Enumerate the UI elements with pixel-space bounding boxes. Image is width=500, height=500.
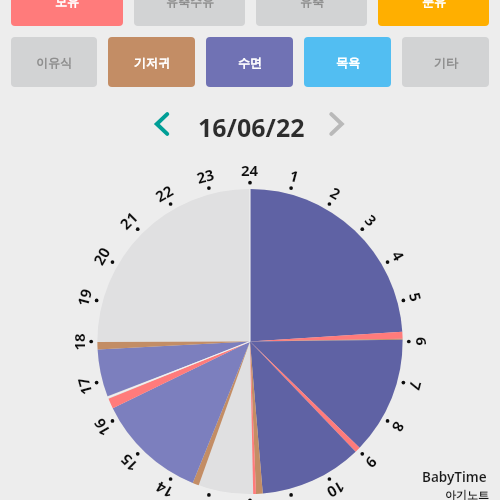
staticText: 유축수유 — [166, 0, 214, 9]
button[interactable]: 유축 — [256, 0, 367, 26]
button[interactable]: 기타 — [402, 37, 489, 87]
staticText: 이유식 — [36, 55, 72, 70]
button[interactable]: 모유 — [11, 0, 123, 26]
staticText: 아기노트 — [445, 488, 489, 500]
staticText: 유축 — [300, 0, 324, 9]
button[interactable]: Previous day — [144, 106, 180, 142]
button[interactable]: Next day — [318, 106, 354, 142]
button[interactable]: 분유 — [378, 0, 489, 26]
staticText: 기저귀 — [134, 55, 170, 70]
staticText: 수면 — [238, 55, 262, 70]
staticText: 모유 — [55, 0, 79, 9]
button[interactable]: 목욕 — [304, 37, 391, 87]
staticText: 목욕 — [336, 55, 360, 70]
button[interactable]: 유축수유 — [134, 0, 245, 26]
staticText: 분유 — [422, 0, 446, 9]
staticText: BabyTime — [422, 468, 487, 486]
staticText: 기타 — [434, 55, 458, 70]
button[interactable]: 기저귀 — [108, 37, 195, 87]
button[interactable]: 이유식 — [11, 37, 97, 87]
button[interactable]: 수면 — [206, 37, 293, 87]
staticText: 16/06/22 — [198, 110, 305, 144]
